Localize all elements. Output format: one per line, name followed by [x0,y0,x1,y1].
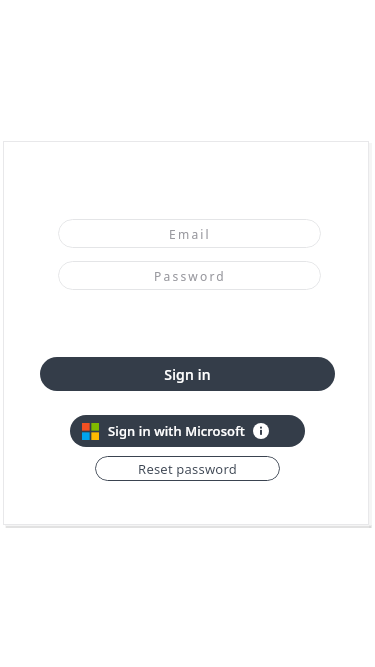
button[interactable]: Reset password [95,456,280,481]
staticText: Sign in with Microsoft [108,422,245,440]
button[interactable]: Email [58,219,321,248]
button[interactable]: Sign in [40,357,335,391]
button[interactable]: Microsoft logo [70,415,305,447]
button[interactable]: Password [58,261,321,290]
other: More information [253,423,269,439]
other: Microsoft logo [82,423,99,440]
staticText: Sign in [164,365,211,384]
staticText: Password [154,268,226,284]
staticText: Email [169,226,211,242]
staticText: Reset password [138,460,237,478]
